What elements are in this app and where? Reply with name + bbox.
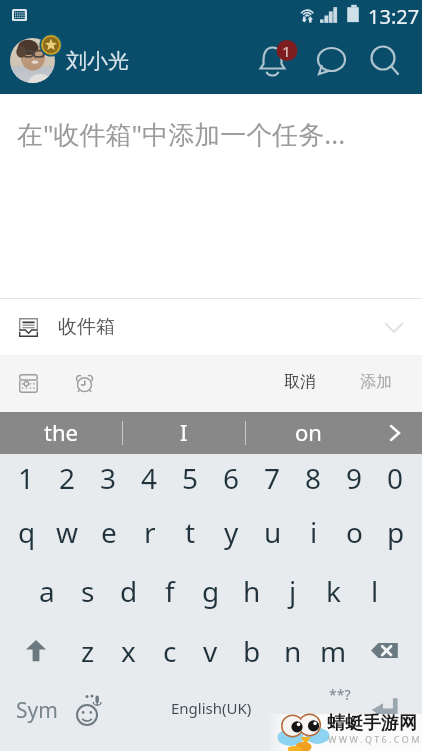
staticText: 0 <box>387 459 404 497</box>
staticText: English(UK) <box>171 698 252 718</box>
button[interactable]: 7 <box>252 454 293 510</box>
staticText: t <box>185 513 196 551</box>
staticText: I <box>180 417 188 447</box>
button[interactable]: l <box>354 568 395 626</box>
button[interactable]: u <box>252 510 293 568</box>
button[interactable]: g <box>190 568 231 626</box>
staticText: r <box>144 513 156 551</box>
button[interactable]: Enter <box>300 684 422 750</box>
button[interactable]: b <box>231 626 272 684</box>
button[interactable]: Backspace <box>354 626 422 684</box>
button[interactable]: s <box>67 568 108 626</box>
staticText: 5 <box>182 459 199 497</box>
staticText: q <box>18 513 36 551</box>
staticText: 1 <box>282 41 291 61</box>
button[interactable]: x <box>108 626 149 684</box>
staticText: 在"收件箱"中添加一个任务... <box>17 116 346 152</box>
button[interactable]: h <box>231 568 272 626</box>
button[interactable]: y <box>211 510 252 568</box>
button[interactable]: Sym <box>0 684 67 750</box>
button[interactable]: c <box>149 626 190 684</box>
staticText: 取消 <box>284 372 316 392</box>
staticText: o <box>346 513 363 551</box>
button[interactable]: k <box>313 568 354 626</box>
button[interactable]: Search <box>359 36 407 84</box>
staticText: j <box>289 572 297 610</box>
staticText: 收件箱 <box>58 315 115 339</box>
button[interactable]: t <box>170 510 211 568</box>
button[interactable]: Emoji and voice input <box>67 684 123 750</box>
button[interactable]: 添加 <box>347 355 404 412</box>
staticText: p <box>387 513 405 551</box>
button[interactable]: m <box>313 626 354 684</box>
button[interactable]: i <box>293 510 334 568</box>
staticText: g <box>202 572 220 610</box>
button[interactable]: q <box>6 510 47 568</box>
button[interactable]: on <box>246 412 370 454</box>
button[interactable]: 收件箱 <box>0 299 422 355</box>
button[interactable]: 取消 <box>271 355 328 412</box>
button[interactable]: n <box>272 626 313 684</box>
button[interactable]: Reminder <box>65 364 103 402</box>
staticText: W W W . Q T 6 . C O M <box>328 733 420 745</box>
button[interactable]: 0 <box>375 454 416 510</box>
staticText: n <box>284 632 302 670</box>
button[interactable]: Shift <box>0 626 67 684</box>
staticText: 刘小光 <box>66 48 129 74</box>
staticText: l <box>371 572 379 610</box>
button[interactable]: e <box>88 510 129 568</box>
staticText: 2 <box>59 459 76 497</box>
button[interactable]: v <box>190 626 231 684</box>
staticText: 7 <box>264 459 281 497</box>
staticText: b <box>243 632 261 670</box>
staticText: v <box>203 632 218 670</box>
button[interactable]: More suggestions <box>370 412 422 454</box>
staticText: 4 <box>141 459 158 497</box>
staticText: 13:27 <box>368 3 420 30</box>
staticText: 6 <box>223 459 240 497</box>
button[interactable]: j <box>272 568 313 626</box>
button[interactable]: r <box>129 510 170 568</box>
button[interactable]: f <box>149 568 190 626</box>
button[interactable]: 1 <box>6 454 47 510</box>
staticText: h <box>243 572 261 610</box>
button[interactable]: Due date <box>9 364 47 402</box>
button[interactable]: Messages <box>308 36 356 84</box>
staticText: c <box>163 632 177 670</box>
staticText: Sym <box>16 696 58 725</box>
staticText: x <box>121 632 136 670</box>
staticText: d <box>120 572 138 610</box>
staticText: 9 <box>346 459 363 497</box>
staticText: u <box>264 513 282 551</box>
staticText: s <box>81 572 95 610</box>
button[interactable]: 9 <box>334 454 375 510</box>
staticText: 8 <box>305 459 322 497</box>
button[interactable]: 6 <box>211 454 252 510</box>
button[interactable]: d <box>108 568 149 626</box>
button[interactable]: 4 <box>129 454 170 510</box>
button[interactable]: I <box>123 412 245 454</box>
staticText: k <box>326 572 341 610</box>
button[interactable]: z <box>67 626 108 684</box>
button[interactable]: English(UK) <box>123 684 300 750</box>
button[interactable]: o <box>334 510 375 568</box>
staticText: w <box>56 513 79 551</box>
button[interactable]: p <box>375 510 416 568</box>
staticText: m <box>320 632 347 670</box>
button[interactable]: the <box>0 412 122 454</box>
staticText: f <box>165 572 175 610</box>
staticText: the <box>44 417 78 447</box>
button[interactable]: Notifications <box>249 36 297 84</box>
staticText: i <box>310 513 318 551</box>
button[interactable]: 2 <box>47 454 88 510</box>
staticText: 蜻蜓手游网 <box>327 712 417 735</box>
staticText: e <box>101 513 117 551</box>
button[interactable]: 5 <box>170 454 211 510</box>
button[interactable]: w <box>47 510 88 568</box>
button[interactable]: a <box>26 568 67 626</box>
staticText: on <box>295 417 322 447</box>
staticText: 1 <box>18 459 35 497</box>
button[interactable]: 8 <box>293 454 334 510</box>
staticText: z <box>81 632 95 670</box>
button[interactable]: 3 <box>88 454 129 510</box>
